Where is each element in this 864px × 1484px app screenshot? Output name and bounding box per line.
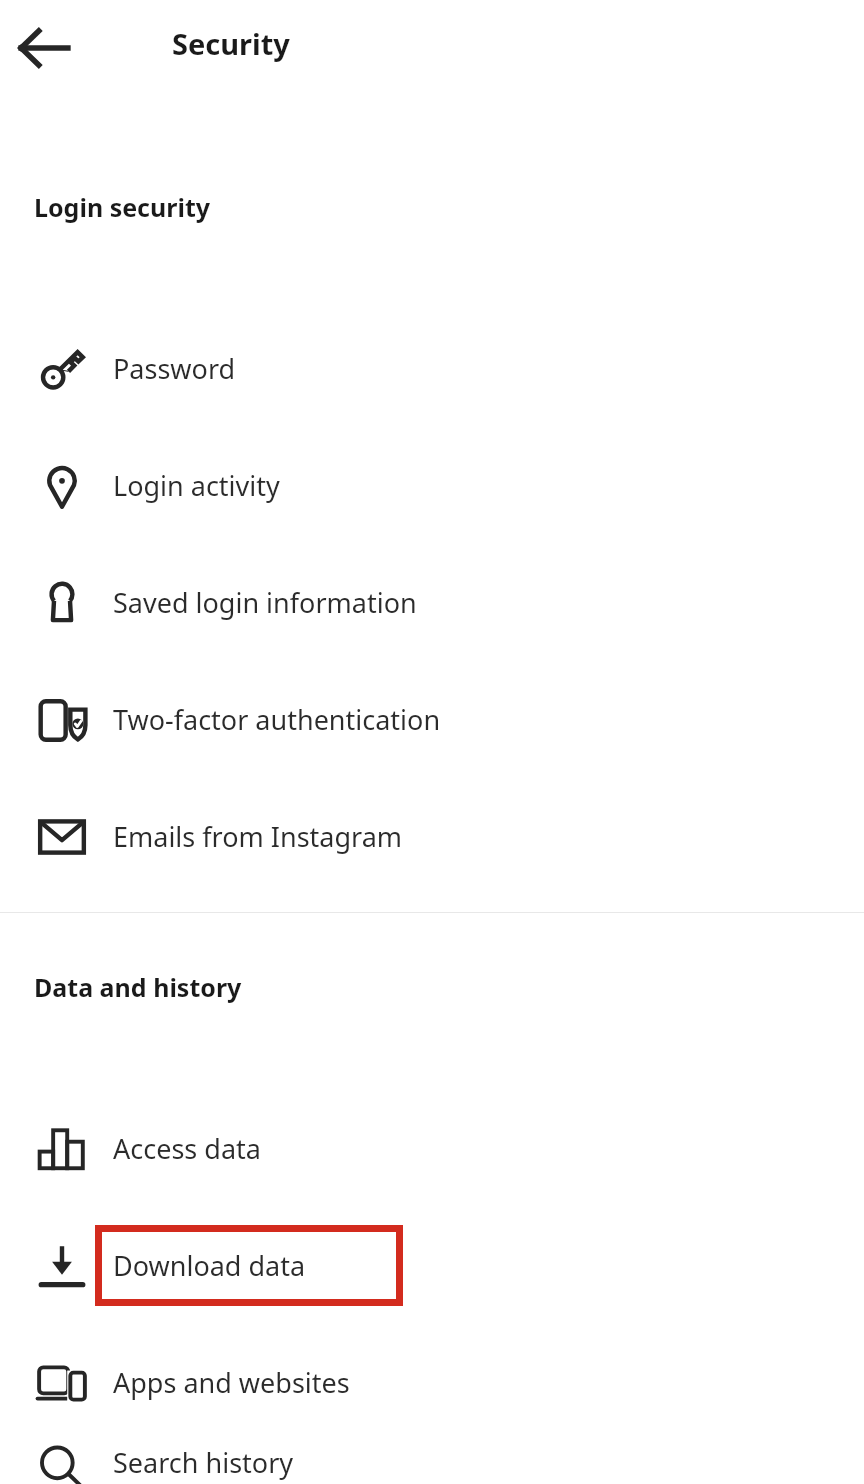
staticText: Login security (34, 190, 211, 224)
button[interactable]: Access data (0, 1090, 864, 1207)
button[interactable]: Password (0, 310, 864, 427)
button[interactable]: Download data (0, 1207, 864, 1324)
button[interactable]: Search history (0, 1441, 864, 1484)
button[interactable]: Login activity (0, 427, 864, 544)
staticText: Search history (113, 1444, 294, 1481)
button[interactable]: Back (18, 22, 70, 74)
button[interactable]: Saved login information (0, 544, 864, 661)
staticText: Login activity (113, 467, 280, 504)
button[interactable]: Two-factor authentication (0, 661, 864, 778)
staticText: Data and history (34, 970, 242, 1004)
staticText: Download data (113, 1247, 306, 1284)
staticText: Two-factor authentication (113, 701, 441, 738)
staticText: Apps and websites (113, 1364, 350, 1401)
button[interactable]: Apps and websites (0, 1324, 864, 1441)
button[interactable]: Emails from Instagram (0, 778, 864, 895)
staticText: Saved login information (113, 584, 417, 621)
staticText: Password (113, 350, 236, 387)
staticText: Access data (113, 1130, 261, 1167)
staticText: Security (172, 24, 290, 63)
staticText: Emails from Instagram (113, 818, 403, 855)
